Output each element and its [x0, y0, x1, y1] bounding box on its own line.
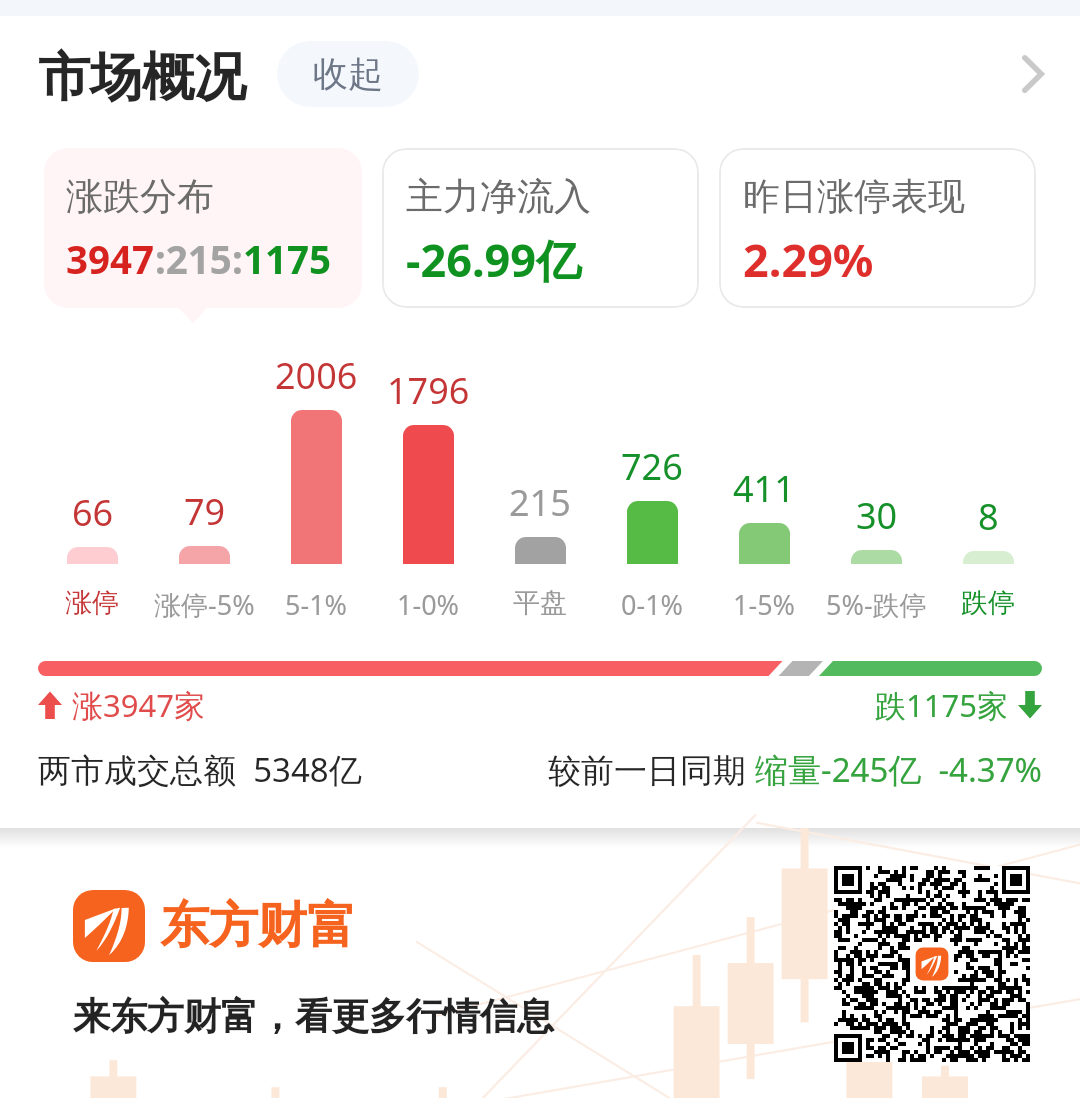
- button[interactable]: 东方财富 广告: [0, 828, 1080, 1098]
- button[interactable]: 1796: [372, 330, 484, 620]
- staticText: 411: [733, 464, 795, 513]
- button[interactable]: Expand: [995, 36, 1071, 112]
- staticText: 来东方财富，看更多行情信息: [73, 993, 554, 1040]
- staticText: 5%-跌停: [826, 586, 927, 620]
- staticText: 726: [621, 442, 683, 491]
- staticText: 收起: [313, 52, 383, 96]
- button[interactable]: 411: [708, 330, 820, 620]
- staticText: 涨停-5%: [154, 586, 255, 620]
- staticText: 3947: [66, 233, 155, 285]
- staticText: 2006: [275, 351, 358, 400]
- staticText: 1-0%: [397, 586, 460, 620]
- staticText: 两市成交总额 5348亿: [38, 747, 362, 792]
- staticText: :215:: [155, 233, 243, 285]
- staticText: 66: [72, 488, 114, 537]
- staticText: 缩量-245亿 -4.37%: [755, 747, 1042, 792]
- button[interactable]: 主力净流入: [382, 148, 699, 308]
- staticText: 5-1%: [285, 586, 348, 620]
- staticText: 跌1175家: [875, 684, 1008, 726]
- staticText: 昨日涨停表现: [743, 173, 965, 220]
- staticText: 0-1%: [621, 586, 684, 620]
- button[interactable]: 66: [36, 330, 148, 620]
- button[interactable]: 2006: [260, 330, 372, 620]
- staticText: 跌停: [961, 586, 1015, 620]
- staticText: 平盘: [513, 586, 567, 620]
- staticText: 1175: [243, 233, 332, 285]
- staticText: 涨3947家: [72, 684, 205, 726]
- staticText: 东方财富: [160, 895, 356, 957]
- button[interactable]: 收起: [277, 41, 419, 107]
- button[interactable]: 79: [148, 330, 260, 620]
- staticText: 涨停: [65, 586, 119, 620]
- staticText: -26.99亿: [406, 229, 582, 290]
- staticText: 涨跌分布: [66, 173, 214, 220]
- staticText: 2.29%: [743, 229, 874, 290]
- staticText: 1-5%: [733, 586, 796, 620]
- staticText: 较前一日同期: [548, 747, 755, 792]
- staticText: 8: [978, 492, 999, 541]
- button[interactable]: 市场概况: [38, 38, 246, 111]
- staticText: 215: [509, 478, 571, 527]
- button[interactable]: 扫描二维码下载: [834, 866, 1030, 1062]
- staticText: 主力净流入: [406, 173, 591, 220]
- button[interactable]: 215: [484, 330, 596, 620]
- button[interactable]: 8: [932, 330, 1044, 620]
- staticText: 79: [184, 487, 226, 536]
- button[interactable]: 昨日涨停表现: [719, 148, 1036, 308]
- staticText: 30: [856, 491, 898, 540]
- button[interactable]: [44, 148, 362, 308]
- button[interactable]: 30: [820, 330, 932, 620]
- staticText: 市场概况: [38, 45, 246, 111]
- button[interactable]: 726: [596, 330, 708, 620]
- staticText: 1796: [387, 366, 470, 415]
